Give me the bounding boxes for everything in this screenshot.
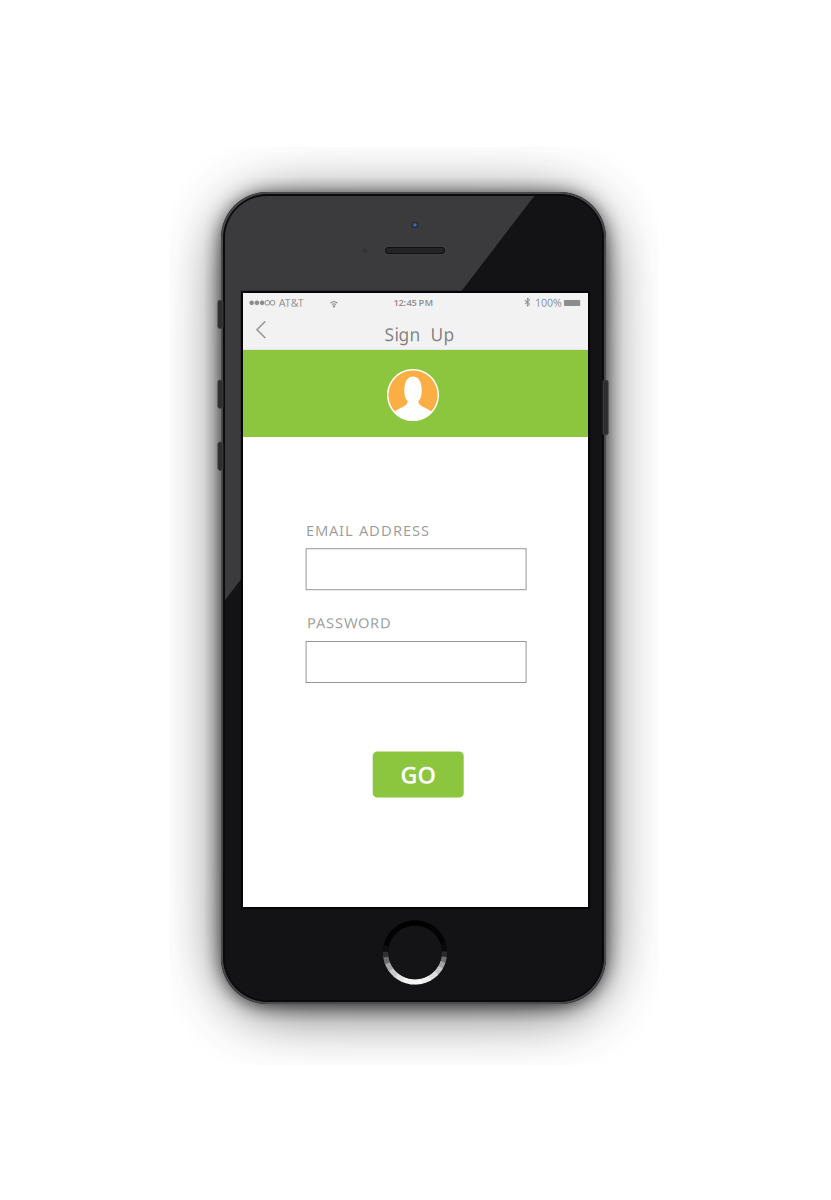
staticText: 12:45 PM xyxy=(393,296,433,309)
staticText: PASSWORD xyxy=(307,613,391,632)
button[interactable]: Back xyxy=(239,311,283,349)
staticText: AT&T xyxy=(279,295,304,310)
staticText: Sign Up xyxy=(384,323,454,346)
staticText: 100% xyxy=(535,295,562,310)
staticText: GO xyxy=(400,759,436,790)
button[interactable]: GO xyxy=(373,751,464,797)
button[interactable]: Email address xyxy=(306,549,526,590)
button[interactable]: Password xyxy=(306,641,526,682)
staticText: EMAIL ADDRESS xyxy=(306,520,429,540)
